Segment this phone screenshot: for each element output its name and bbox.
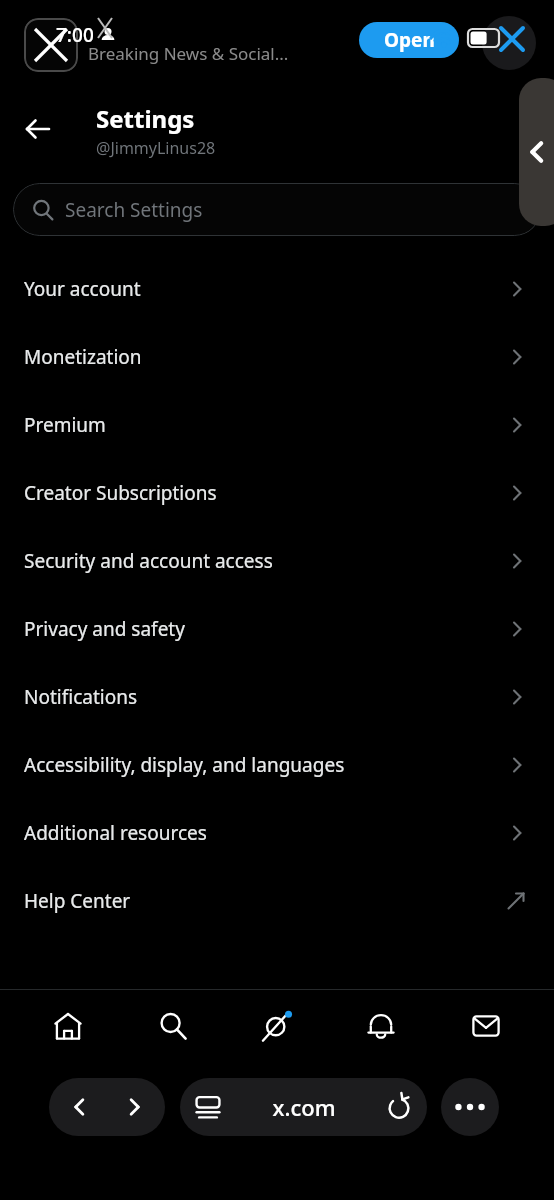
staticText: Breaking News & Social... — [88, 42, 289, 65]
button[interactable]: Notifications — [345, 994, 417, 1058]
button[interactable]: Back gesture — [519, 78, 554, 226]
staticText: Accessibility, display, and languages — [24, 752, 345, 778]
staticText: @JimmyLinus28 — [96, 137, 216, 159]
staticText: Creator Subscriptions — [24, 480, 217, 506]
button[interactable]: Premium — [0, 391, 554, 459]
button[interactable]: Help Center — [0, 867, 554, 935]
button[interactable]: Your account — [0, 255, 554, 323]
button[interactable]: Creator Subscriptions — [0, 459, 554, 527]
staticText: Security and account access — [24, 548, 273, 574]
button[interactable]: Reader view — [180, 1078, 236, 1136]
button[interactable]: Close banner — [497, 24, 527, 54]
staticText: Open — [384, 27, 435, 53]
staticText: Privacy and safety — [24, 616, 185, 642]
button[interactable]: Security and account access — [0, 527, 554, 595]
staticText: Settings — [96, 102, 195, 135]
button[interactable]: Messages — [450, 994, 522, 1058]
staticText: Premium — [24, 412, 106, 438]
staticText: Additional resources — [24, 820, 207, 846]
button[interactable]: Notifications — [0, 663, 554, 731]
button[interactable]: Privacy and safety — [0, 595, 554, 663]
button[interactable]: Open — [359, 22, 459, 58]
staticText: Search Settings — [65, 197, 203, 223]
button[interactable]: Home — [32, 994, 104, 1058]
button[interactable]: Grok — [241, 994, 313, 1058]
button[interactable]: Forward — [110, 1078, 158, 1136]
button[interactable]: Reader view — [180, 1078, 427, 1136]
staticText: Monetization — [24, 344, 142, 370]
button[interactable]: Back — [16, 107, 60, 151]
staticText: Help Center — [24, 888, 131, 914]
button[interactable]: Reload — [371, 1078, 427, 1136]
button[interactable]: Additional resources — [0, 799, 554, 867]
button[interactable]: Accessibility, display, and languages — [0, 731, 554, 799]
staticText: 7:00 — [56, 22, 94, 48]
staticText: x.com — [272, 1092, 336, 1122]
button[interactable]: More — [441, 1078, 499, 1136]
staticText: Notifications — [24, 684, 138, 710]
button[interactable]: Back — [56, 1078, 104, 1136]
button[interactable]: Search Settings — [13, 183, 541, 236]
button[interactable]: Search — [137, 994, 209, 1058]
staticText: Your account — [24, 276, 141, 302]
button[interactable]: Monetization — [0, 323, 554, 391]
